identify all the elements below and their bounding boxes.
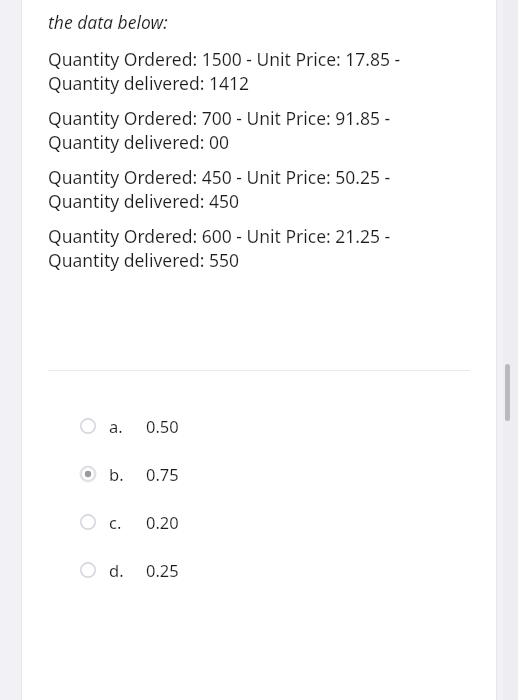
button[interactable]: d. — [21, 546, 497, 594]
staticText: 0.75 — [146, 463, 179, 485]
button[interactable]: a. — [21, 402, 497, 450]
staticText: Quantity Ordered: 600 - Unit Price: 21.2… — [48, 224, 391, 248]
staticText: the data below: — [48, 10, 168, 34]
staticText: Quantity Ordered: 1500 - Unit Price: 17.… — [48, 47, 401, 71]
staticText: Quantity delivered: 450 — [48, 189, 239, 213]
staticText: Quantity delivered: 550 — [48, 248, 239, 272]
staticText: a. — [109, 415, 123, 437]
staticText: Quantity delivered: 00 — [48, 130, 229, 154]
staticText: Quantity Ordered: 450 - Unit Price: 50.2… — [48, 165, 391, 189]
staticText: Quantity Ordered: 700 - Unit Price: 91.8… — [48, 106, 391, 130]
staticText: 0.25 — [146, 559, 179, 581]
staticText: c. — [109, 511, 122, 533]
staticText: b. — [109, 463, 124, 485]
staticText: 0.20 — [146, 511, 179, 533]
other: Scroll position — [505, 364, 510, 421]
staticText: d. — [109, 559, 124, 581]
button[interactable]: b. — [21, 450, 497, 498]
staticText: Quantity delivered: 1412 — [48, 71, 249, 95]
staticText: 0.50 — [146, 415, 179, 437]
button[interactable]: c. — [21, 498, 497, 546]
